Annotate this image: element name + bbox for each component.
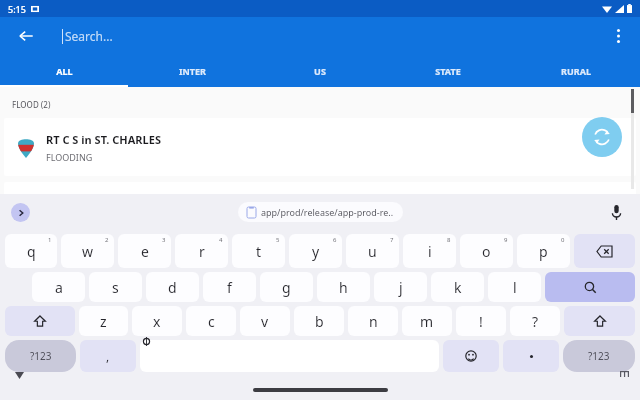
button[interactable]: h bbox=[317, 272, 370, 302]
button[interactable]: ALL bbox=[0, 55, 128, 87]
button[interactable]: ! bbox=[456, 306, 506, 336]
staticText: l bbox=[513, 278, 517, 297]
staticText: q bbox=[27, 242, 36, 261]
staticText: d bbox=[168, 278, 177, 297]
button[interactable]: Back bbox=[12, 22, 40, 50]
button[interactable]: More options bbox=[604, 22, 632, 50]
staticText: STATE bbox=[435, 65, 461, 77]
button[interactable]: z bbox=[79, 306, 128, 336]
staticText: 9 bbox=[504, 236, 508, 244]
button[interactable]: US bbox=[256, 55, 384, 87]
button[interactable]: p bbox=[517, 234, 570, 268]
staticText: Search... bbox=[65, 28, 113, 44]
button[interactable]: app/prod/release/app-prod-re.. bbox=[238, 202, 403, 222]
staticText: f bbox=[227, 278, 232, 297]
button[interactable]: t bbox=[232, 234, 285, 268]
staticText: o bbox=[482, 242, 491, 261]
staticText: u bbox=[368, 242, 377, 261]
staticText: 3 bbox=[162, 236, 166, 244]
staticText: m bbox=[420, 312, 434, 331]
button[interactable]: r bbox=[175, 234, 228, 268]
staticText: n bbox=[369, 312, 378, 331]
button[interactable]: k bbox=[431, 272, 484, 302]
button[interactable]: j bbox=[374, 272, 427, 302]
button[interactable]: n bbox=[348, 306, 398, 336]
button[interactable]: d bbox=[146, 272, 199, 302]
staticText: ?123 bbox=[588, 349, 610, 363]
button[interactable]: w bbox=[61, 234, 114, 268]
button[interactable]: l bbox=[488, 272, 541, 302]
button[interactable]: o bbox=[460, 234, 513, 268]
button[interactable]: RURAL bbox=[512, 55, 640, 87]
button[interactable]: y bbox=[289, 234, 342, 268]
button[interactable]: v bbox=[240, 306, 290, 336]
staticText: FLOOD (2) bbox=[12, 99, 51, 110]
button[interactable]: INTER bbox=[128, 55, 256, 87]
staticText: 0 bbox=[561, 236, 565, 244]
staticText: j bbox=[399, 278, 403, 297]
staticText: ?123 bbox=[30, 349, 52, 363]
staticText: 1 bbox=[48, 236, 52, 244]
staticText: s bbox=[112, 278, 119, 297]
staticText: i bbox=[428, 242, 432, 261]
staticText: 5:15 bbox=[8, 3, 26, 15]
staticText: p bbox=[539, 242, 548, 261]
button[interactable]: g bbox=[260, 272, 313, 302]
staticText: 6 bbox=[333, 236, 337, 244]
staticText: 7 bbox=[390, 236, 394, 244]
staticText: x bbox=[153, 312, 161, 331]
staticText: a bbox=[55, 278, 63, 297]
button[interactable]: Space bbox=[140, 340, 439, 372]
staticText: e bbox=[141, 242, 149, 261]
staticText: w bbox=[82, 242, 94, 261]
staticText: k bbox=[454, 278, 462, 297]
staticText: RURAL bbox=[561, 65, 591, 77]
button[interactable]: Refresh bbox=[582, 117, 622, 157]
button[interactable]: Shift bbox=[5, 306, 75, 336]
button[interactable]: RT C S in ST. CHARLES bbox=[4, 118, 636, 176]
staticText: c bbox=[208, 312, 215, 331]
staticText: ! bbox=[479, 312, 483, 331]
button[interactable]: s bbox=[89, 272, 142, 302]
staticText: 5 bbox=[276, 236, 280, 244]
button[interactable]: b bbox=[294, 306, 344, 336]
button[interactable]: c bbox=[186, 306, 236, 336]
staticText: FLOODING bbox=[46, 151, 93, 163]
staticText: g bbox=[282, 278, 291, 297]
staticText: RT C S in ST. CHARLES bbox=[46, 132, 161, 147]
button[interactable]: m bbox=[402, 306, 452, 336]
button[interactable]: , bbox=[80, 340, 136, 372]
button[interactable]: i bbox=[403, 234, 456, 268]
staticText: ALL bbox=[56, 65, 73, 77]
button[interactable]: ?123 bbox=[563, 340, 635, 372]
button[interactable]: q bbox=[5, 234, 57, 268]
button[interactable]: Expand suggestions bbox=[11, 203, 30, 222]
button[interactable]: ?123 bbox=[5, 340, 76, 372]
button[interactable]: f bbox=[203, 272, 256, 302]
button[interactable]: Emoji bbox=[443, 340, 499, 372]
staticText: y bbox=[312, 242, 320, 261]
staticText: v bbox=[261, 312, 269, 331]
button[interactable]: Voice input bbox=[606, 202, 626, 222]
button[interactable]: STATE bbox=[384, 55, 512, 87]
button[interactable] bbox=[503, 340, 559, 372]
staticText: t bbox=[256, 242, 262, 261]
staticText: US bbox=[314, 65, 326, 77]
staticText: , bbox=[106, 348, 110, 364]
button[interactable]: ? bbox=[510, 306, 560, 336]
button[interactable]: Search bbox=[545, 272, 635, 302]
staticText: h bbox=[339, 278, 348, 297]
staticText: z bbox=[100, 312, 107, 331]
button[interactable]: e bbox=[118, 234, 171, 268]
button[interactable]: x bbox=[132, 306, 182, 336]
button[interactable]: u bbox=[346, 234, 399, 268]
staticText: INTER bbox=[179, 65, 206, 77]
button[interactable]: Backspace bbox=[574, 234, 635, 268]
staticText: 4 bbox=[219, 236, 223, 244]
button[interactable]: Shift bbox=[564, 306, 635, 336]
staticText: ? bbox=[532, 312, 539, 331]
staticText: r bbox=[199, 242, 205, 261]
button[interactable]: a bbox=[32, 272, 85, 302]
staticText: 2 bbox=[105, 236, 109, 244]
